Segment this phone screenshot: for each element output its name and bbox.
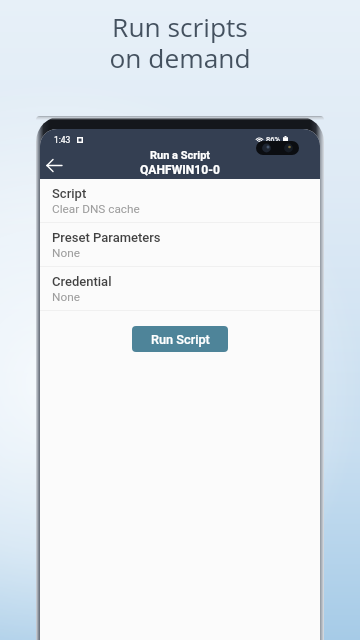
staticText: Run a Script — [150, 149, 211, 162]
staticText: QAHFWIN10-0 — [140, 163, 220, 177]
staticText: None — [52, 290, 80, 304]
button[interactable]: Script — [40, 179, 320, 223]
button[interactable]: Back — [46, 157, 63, 174]
staticText: Run scripts on demand — [109, 9, 251, 76]
staticText: Run Script — [151, 332, 210, 347]
staticText: Clear DNS cache — [52, 202, 140, 216]
staticText: 1:43 — [54, 135, 71, 145]
staticText: 86% — [266, 135, 280, 144]
button[interactable]: Preset Parameters — [40, 223, 320, 267]
button[interactable]: Run Script — [132, 326, 228, 352]
button[interactable]: Credential — [40, 267, 320, 311]
staticText: Script — [52, 186, 87, 201]
staticText: Credential — [52, 274, 112, 289]
staticText: Preset Parameters — [52, 230, 161, 245]
staticText: None — [52, 246, 80, 260]
